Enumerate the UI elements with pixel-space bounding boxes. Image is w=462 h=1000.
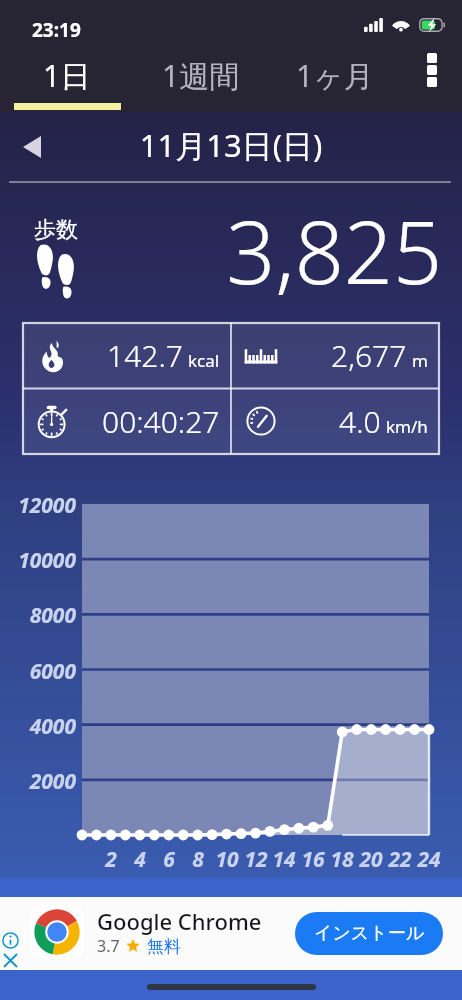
staticText: 22 (384, 845, 416, 874)
staticText: 10000 (0, 546, 76, 575)
staticText: 16 (297, 845, 329, 874)
staticText: km/h (386, 415, 428, 438)
staticText: 4.0 (339, 401, 381, 442)
staticText: 1週間 (162, 55, 240, 96)
button[interactable]: 1日 (0, 46, 134, 112)
staticText: 6000 (0, 657, 76, 686)
staticText: 歩数 (34, 216, 78, 244)
staticText: 14 (268, 845, 300, 874)
staticText: 24 (413, 845, 445, 874)
staticText: 8000 (0, 601, 76, 630)
staticText: 23:19 (32, 17, 81, 43)
staticText: Google Chrome (97, 906, 262, 936)
staticText: 18 (326, 845, 358, 874)
staticText: 1日 (43, 55, 91, 96)
button[interactable]: More options (402, 37, 462, 103)
staticText: 1ヶ月 (296, 55, 374, 96)
staticText: 4 (124, 845, 156, 874)
staticText: 11月13日(日) (0, 124, 462, 166)
staticText: 142.7 (107, 335, 183, 376)
button[interactable]: Ad info (2, 932, 19, 949)
staticText: 10 (211, 845, 243, 874)
button[interactable]: 1週間 (134, 46, 268, 112)
button[interactable]: Close ad (2, 952, 19, 969)
staticText: 3,825 (0, 192, 442, 309)
button[interactable]: 1ヶ月 (268, 46, 402, 112)
staticText: 2000 (0, 767, 76, 796)
staticText: 12 (240, 845, 272, 874)
button[interactable]: インストール (295, 912, 443, 955)
staticText: 6 (153, 845, 185, 874)
button[interactable]: 2,677 (231, 323, 439, 388)
staticText: 2 (95, 845, 127, 874)
staticText: 20 (355, 845, 387, 874)
button[interactable]: Previous day (9, 124, 55, 170)
button[interactable]: 00:40:27 (23, 388, 231, 454)
staticText: 3.7 (97, 935, 120, 957)
staticText: 4000 (0, 712, 76, 741)
staticText: 12000 (0, 491, 76, 520)
button[interactable]: 142.7 (23, 323, 231, 388)
staticText: 8 (182, 845, 214, 874)
staticText: m (412, 349, 428, 372)
staticText: 無料 (147, 936, 181, 957)
staticText: kcal (188, 349, 220, 372)
staticText: インストール (314, 922, 425, 945)
staticText: 2,677 (331, 335, 407, 376)
button[interactable]: 4.0 (231, 388, 439, 454)
staticText: 00:40:27 (102, 401, 220, 442)
